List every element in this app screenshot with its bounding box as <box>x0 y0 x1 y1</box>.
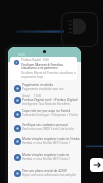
staticText: Pagamento recebido com suc <box>22 87 64 91</box>
staticText: Pagamento recebido <box>22 83 54 87</box>
staticText: Tem um plano inicial de 4200? <box>22 169 67 173</box>
button[interactable]: Muito simples registrar tudo no Simbo <box>22 137 80 145</box>
button[interactable]: Muito simples registrar tudo no Sistema <box>22 153 80 161</box>
staticText: Verifique seu cadastro pessoal <box>22 123 68 127</box>
button[interactable]: Gmail 10:45 <box>22 94 80 106</box>
staticText: Proibus Digital 8:45 <box>21 58 49 62</box>
staticText: Gmail 10:45 <box>22 94 42 98</box>
staticText: Vendas e criar Similar BCP Conta 1 <box>22 157 71 161</box>
staticText: Cope nde ser por aqui no Sentid <box>22 109 71 113</box>
staticText: Muito simples registrar tudo no Sistema <box>22 153 80 157</box>
button[interactable]: Verifique seu cadastro pessoal <box>22 123 80 131</box>
button[interactable]: Next <box>90 158 103 172</box>
staticText: Muito simples registrar tudo no Simbo <box>22 137 80 141</box>
staticText: Inteligente: Sua Nota de Recolhim. <box>22 102 71 106</box>
staticText: Fique com seus adicionais nas soluçõe <box>22 173 76 177</box>
staticText: Controles Entregue > Despesas > Patríci <box>22 113 78 117</box>
staticText: Proibus Digital conf. <Proibus Digital> <box>22 98 79 102</box>
staticText: Ocultem Maverick Fenelou visualizou o or… <box>21 71 77 78</box>
button[interactable]: Tem um plano inicial de 4200? <box>22 169 80 177</box>
button[interactable]: Pagamento recebido <box>22 83 80 91</box>
staticText: Você esta com 0800 5 em 0 de la tela <box>22 127 74 131</box>
staticText: Vendas e criar Similar BCP Conta 1 <box>22 141 71 145</box>
button[interactable]: Proibus Digital 8:45 <box>10 57 77 80</box>
staticText: Ocultem Maverick Fenelou visualizou o or… <box>21 62 77 70</box>
button[interactable]: Cope nde ser por aqui no Sentid <box>22 109 80 117</box>
